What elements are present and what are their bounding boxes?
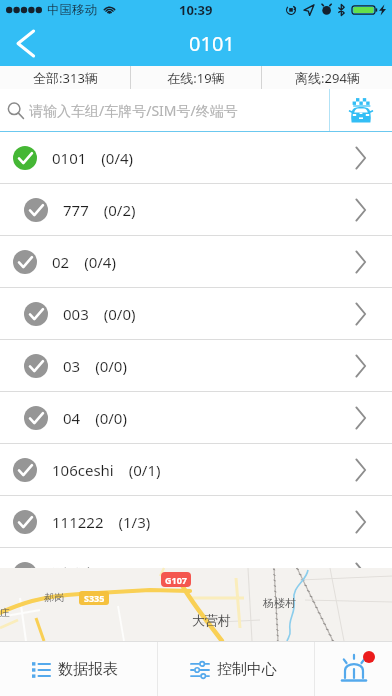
staticText: 02 (0/4) [52,252,116,272]
staticText: 庄 [0,606,10,619]
button[interactable]: 003 (0/0) [0,288,392,339]
staticText: 中国移动 [47,2,97,18]
staticText: 0101 [189,30,235,57]
button[interactable]: 数据报表 [0,642,157,696]
button[interactable]: 控制中心 [158,642,314,696]
staticText: 003 (0/0) [63,304,136,324]
staticText: 全部:313辆 [33,69,98,87]
button[interactable]: 111222 (1/3) [0,496,392,547]
staticText: 杨楼村 [263,596,296,610]
staticText: 0101 (0/4) [52,148,134,168]
staticText: 106ceshi (0/1) [52,460,161,480]
staticText: 郝岗 [44,591,64,604]
staticText: 03 (0/0) [63,356,127,376]
staticText: 10:39 [179,1,213,19]
staticText: 04 (0/0) [63,408,127,428]
staticText: 控制中心 [217,660,277,679]
button[interactable]: 请输入车组/车牌号/SIM号/终端号 [0,89,329,131]
button[interactable]: 106ceshi (0/1) [0,444,392,495]
staticText: 离线:294辆 [295,69,360,87]
button[interactable]: 离线:294辆 [262,66,392,89]
button[interactable]: 777 (0/2) [0,184,392,235]
staticText: S335 [84,592,105,604]
staticText: 请输入车组/车牌号/SIM号/终端号 [29,101,238,120]
staticText: 777 (0/2) [63,200,136,220]
staticText: 数据报表 [58,660,118,679]
button[interactable]: 04 (0/0) [0,392,392,443]
button[interactable]: 02 (0/4) [0,236,392,287]
button[interactable]: 03 (0/0) [0,340,392,391]
button[interactable]: Alarms [315,642,392,696]
button[interactable]: Back [0,20,52,66]
button[interactable]: 测试车组 (0/2) [0,548,392,568]
button[interactable]: 在线:19辆 [131,66,261,89]
staticText: G107 [165,574,187,586]
staticText: 测试车组 (0/2) [52,564,159,568]
staticText: 111222 (1/3) [52,512,151,532]
staticText: 在线:19辆 [167,69,225,87]
button[interactable]: 全部:313辆 [0,66,130,89]
button[interactable]: 0101 (0/4) [0,132,392,183]
staticText: 大营村 [192,612,231,628]
button[interactable]: Vehicle list [330,89,392,131]
